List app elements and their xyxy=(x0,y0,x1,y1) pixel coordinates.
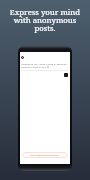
button[interactable]: Comment xyxy=(64,73,68,77)
staticText: Moving on from all of it 😊 xyxy=(21,66,50,69)
staticText: I wanted to yell - when I loved or assum… xyxy=(21,63,68,66)
staticText: Post something anonymously xyxy=(30,154,60,157)
button[interactable]: Post something anonymously xyxy=(22,152,68,158)
staticText: Express your mind with anonymous posts. xyxy=(5,7,85,33)
button[interactable]: I wanted to yell - when I loved or assum… xyxy=(21,52,68,77)
